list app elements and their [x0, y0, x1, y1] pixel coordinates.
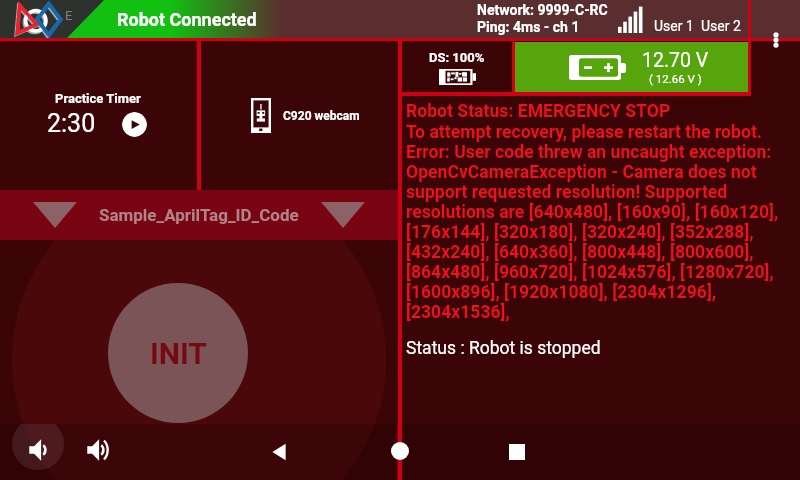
- button[interactable]: More options: [756, 20, 796, 60]
- staticText: ( 12.66 V ): [649, 72, 702, 85]
- staticText: Status : Robot is stopped: [406, 338, 601, 359]
- button[interactable]: 12.70 V: [515, 42, 748, 92]
- button[interactable]: Back: [262, 434, 298, 470]
- staticText: Robot Connected: [117, 9, 257, 30]
- staticText: Practice Timer: [55, 91, 141, 106]
- button[interactable]: Start practice timer: [122, 112, 147, 137]
- staticText: Robot Status: EMERGENCY STOP To attempt …: [406, 101, 782, 323]
- button[interactable]: Volume up: [87, 439, 109, 461]
- button[interactable]: Home: [382, 433, 417, 468]
- staticText: INIT: [150, 336, 207, 371]
- button[interactable]: C920 webcam: [251, 98, 360, 133]
- button[interactable]: DS: 100%: [402, 42, 512, 92]
- staticText: E: [65, 8, 73, 23]
- button[interactable]: Recents: [499, 434, 535, 470]
- staticText: C920 webcam: [283, 109, 360, 123]
- staticText: User 2: [701, 18, 741, 34]
- button[interactable]: INIT: [108, 283, 248, 423]
- staticText: 12.70 V: [642, 49, 709, 72]
- staticText: Network: 9999-C-RC: [477, 2, 608, 18]
- staticText: 2:30: [47, 109, 96, 138]
- button[interactable]: Sample_AprilTag_ID_Code: [0, 190, 398, 240]
- staticText: User 1: [654, 18, 694, 34]
- staticText: Ping: 4ms - ch 1: [477, 19, 580, 35]
- button[interactable]: Volume down: [29, 439, 51, 461]
- staticText: Sample_AprilTag_ID_Code: [99, 205, 299, 225]
- staticText: DS: 100%: [429, 50, 485, 65]
